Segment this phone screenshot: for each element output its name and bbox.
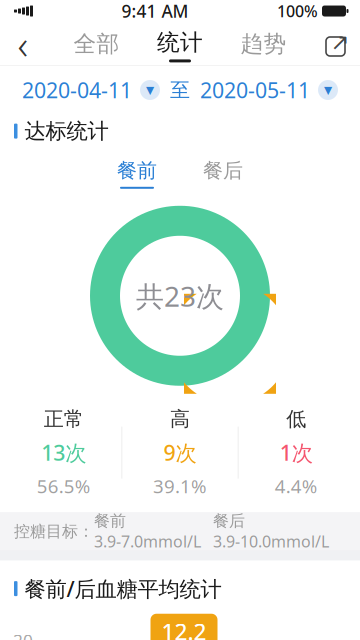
staticText: 餐前/后血糖平均统计 <box>24 574 221 603</box>
staticText: 2020-04-11 <box>22 76 132 104</box>
button[interactable]: 餐前 <box>109 158 165 189</box>
staticText: 高 <box>170 407 190 431</box>
staticText: ↗ <box>330 29 349 55</box>
staticText: 至 <box>170 78 190 102</box>
staticText: 餐前3.9-7.0mmol/L <box>94 511 201 552</box>
staticText: ▼ <box>146 84 154 96</box>
staticText: 4.4% <box>275 474 318 498</box>
staticText: 统计 <box>157 29 203 56</box>
button[interactable]: 2020-04-11 <box>22 76 160 104</box>
staticText: 39.1% <box>153 474 207 498</box>
staticText: 1次 <box>280 438 313 467</box>
button[interactable]: 统计 <box>147 22 213 66</box>
staticText: 12.2 <box>161 617 206 640</box>
staticText: 全部 <box>73 30 119 58</box>
staticText: 共23次 <box>136 277 224 314</box>
staticText: 餐前 <box>117 158 157 183</box>
staticText: 正常 <box>44 407 84 431</box>
button[interactable]: 2020-05-11 <box>200 76 338 104</box>
staticText: 20 <box>13 629 33 640</box>
staticText: 13次 <box>41 438 86 467</box>
button[interactable]: 餐后 <box>195 158 251 189</box>
button[interactable]: 趋势 <box>230 22 296 66</box>
button[interactable]: 分享 <box>314 22 360 66</box>
staticText: 56.5% <box>37 474 91 498</box>
staticText: 餐后3.9-10.0mmol/L <box>213 511 329 552</box>
staticText: 趋势 <box>240 30 286 58</box>
button[interactable]: 返回 <box>0 22 46 66</box>
button[interactable]: 全部 <box>63 22 129 66</box>
staticText: 100% <box>277 0 318 22</box>
staticText: 达标统计 <box>24 118 108 144</box>
staticText: 9次 <box>163 438 196 467</box>
staticText: ‹ <box>17 17 28 70</box>
staticText: ▼ <box>324 84 332 96</box>
staticText: 9:41 AM <box>121 0 188 22</box>
staticText: 低 <box>286 407 306 431</box>
staticText: 餐后 <box>203 158 243 183</box>
staticText: 控糖目标： <box>14 522 94 541</box>
staticText: 2020-05-11 <box>200 76 310 104</box>
